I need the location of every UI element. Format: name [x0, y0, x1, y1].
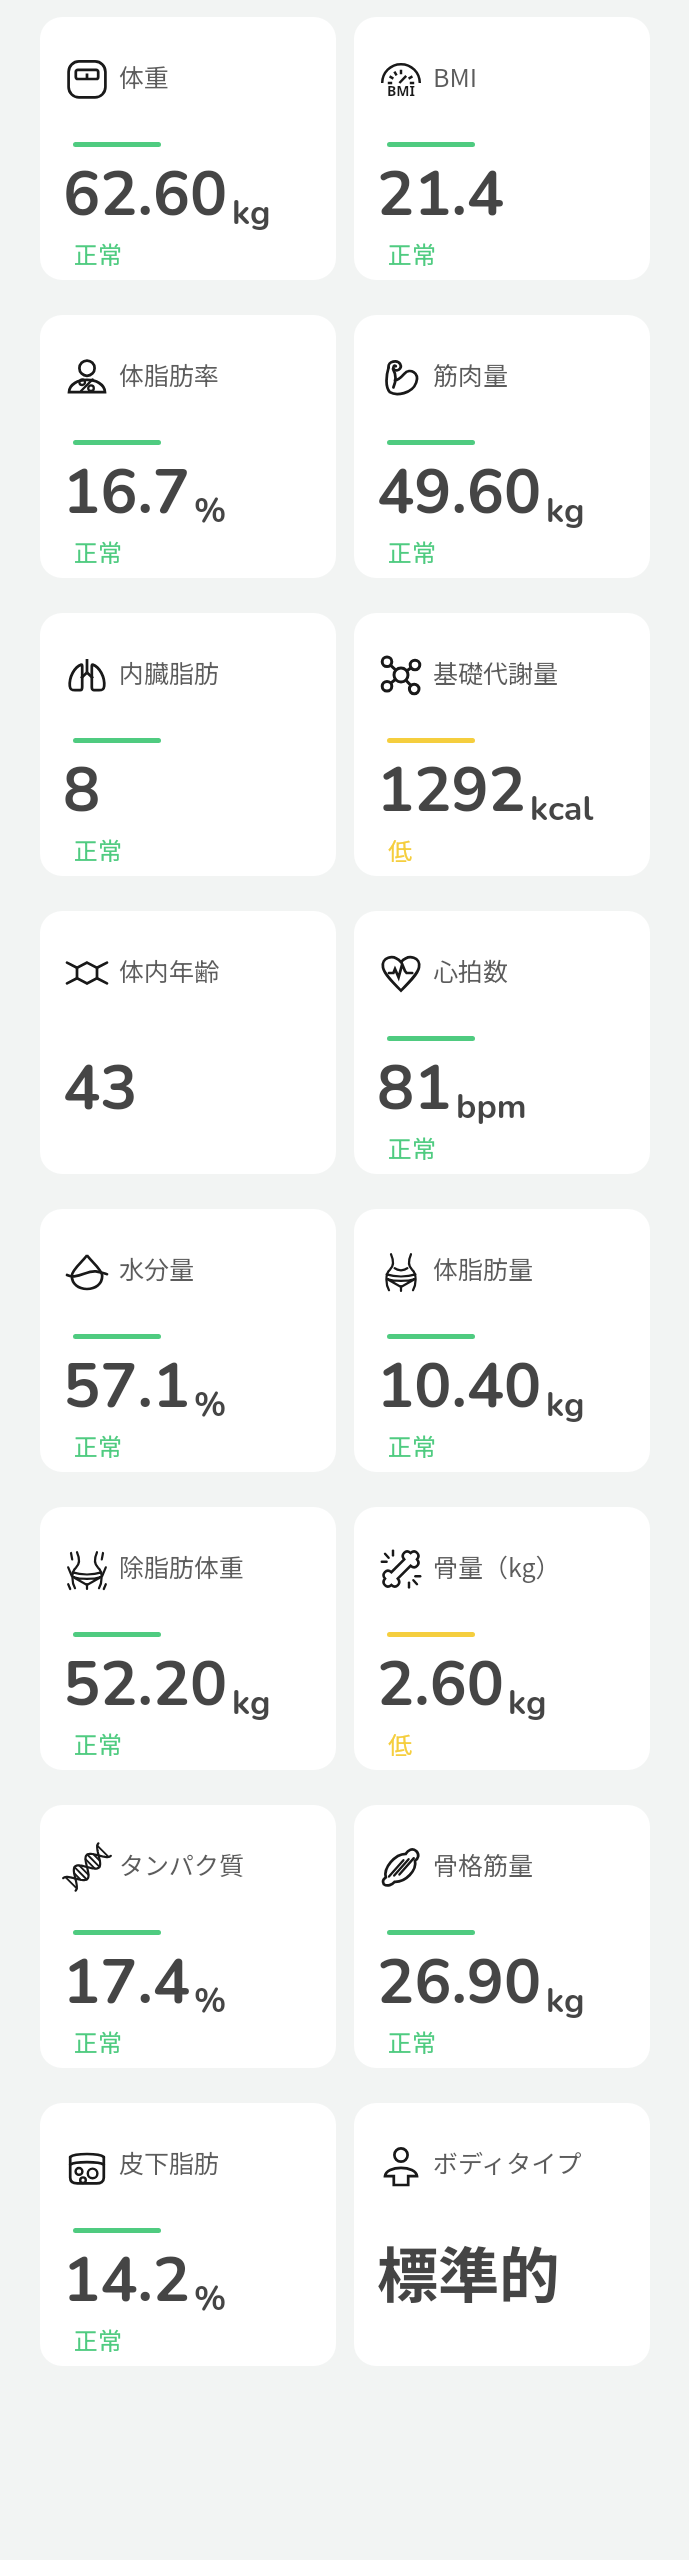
staticText: 正常	[388, 1428, 436, 1463]
staticText: 26.90	[377, 1940, 542, 2025]
staticText: 81	[377, 1046, 452, 1131]
staticText: kg	[232, 190, 271, 236]
staticText: 正常	[74, 236, 122, 271]
staticText: 低	[388, 832, 412, 867]
button[interactable]: bmi	[354, 17, 650, 280]
staticText: 16.7	[63, 450, 190, 535]
staticText: kg	[546, 1978, 585, 2024]
staticText: 体脂肪率	[119, 356, 220, 392]
staticText: 2.60	[377, 1642, 504, 1727]
staticText: BMI	[387, 81, 415, 100]
staticText: タンパク質	[119, 1846, 245, 1882]
staticText: 除脂肪体重	[119, 1548, 245, 1584]
staticText: 62.60	[63, 152, 228, 237]
button[interactable]: hexagon	[40, 911, 336, 1174]
other: hexagon	[67, 953, 107, 993]
staticText: 43	[63, 1046, 138, 1131]
other: lungs	[67, 655, 107, 695]
staticText: 正常	[388, 236, 436, 271]
other: person	[381, 2145, 421, 2185]
staticText: %	[194, 2276, 227, 2322]
staticText: 基礎代謝量	[433, 654, 559, 690]
button[interactable]: fiber	[354, 1805, 650, 2068]
other: waist	[381, 1251, 421, 1291]
staticText: ボディタイプ	[433, 2144, 582, 2180]
staticText: 体内年齢	[119, 952, 220, 988]
other: dna	[67, 1847, 107, 1887]
button[interactable]: waist2	[40, 1507, 336, 1770]
button[interactable]: drop	[40, 1209, 336, 1472]
staticText: 骨量（kg）	[433, 1548, 561, 1584]
staticText: 1292	[377, 748, 526, 833]
staticText: 17.4	[63, 1940, 190, 2025]
staticText: 筋肉量	[433, 356, 509, 392]
staticText: 骨格筋量	[433, 1846, 534, 1882]
staticText: 14.2	[63, 2238, 190, 2323]
staticText: 正常	[74, 2322, 122, 2357]
staticText: 57.1	[63, 1344, 190, 1429]
other: bmi	[381, 59, 421, 99]
other: scale	[67, 59, 107, 99]
staticText: 8	[63, 748, 101, 833]
staticText: 標準的	[377, 2227, 561, 2315]
staticText: 体脂肪量	[433, 1250, 534, 1286]
other: jar	[67, 2145, 107, 2185]
button[interactable]: lungs	[40, 613, 336, 876]
button[interactable]: scale	[40, 17, 336, 280]
staticText: kg	[546, 1382, 585, 1428]
staticText: 正常	[74, 832, 122, 867]
staticText: kg	[508, 1680, 547, 1726]
staticText: 正常	[74, 534, 122, 569]
staticText: 心拍数	[433, 952, 509, 988]
staticText: kg	[546, 488, 585, 534]
staticText: kcal	[530, 786, 594, 832]
staticText: 内臓脂肪	[119, 654, 220, 690]
button[interactable]: waist	[354, 1209, 650, 1472]
staticText: BMI	[433, 58, 478, 94]
staticText: 体重	[119, 58, 170, 94]
staticText: 皮下脂肪	[119, 2144, 220, 2180]
staticText: 水分量	[119, 1250, 195, 1286]
staticText: 21.4	[377, 152, 504, 237]
staticText: %	[194, 1382, 227, 1428]
staticText: 正常	[74, 2024, 122, 2059]
staticText: kg	[232, 1680, 271, 1726]
staticText: 10.40	[377, 1344, 542, 1429]
button[interactable]: jar	[40, 2103, 336, 2366]
staticText: %	[194, 1978, 227, 2024]
button[interactable]: dna	[40, 1805, 336, 2068]
staticText: %	[194, 488, 227, 534]
staticText: 正常	[74, 1428, 122, 1463]
staticText: 52.20	[63, 1642, 228, 1727]
staticText: bpm	[456, 1084, 527, 1130]
other: bodyfat	[67, 357, 107, 397]
staticText: 正常	[388, 2024, 436, 2059]
other: drop	[67, 1251, 107, 1291]
button[interactable]: heart	[354, 911, 650, 1174]
button[interactable]: bodyfat	[40, 315, 336, 578]
staticText: 正常	[74, 1726, 122, 1761]
other: heart	[381, 953, 421, 993]
button[interactable]: person	[354, 2103, 650, 2366]
button[interactable]: bone	[354, 1507, 650, 1770]
button[interactable]: muscle	[354, 315, 650, 578]
staticText: 49.60	[377, 450, 542, 535]
other: waist2	[67, 1549, 107, 1589]
staticText: 正常	[388, 1130, 436, 1165]
other: muscle	[381, 357, 421, 397]
other: molecule	[381, 655, 421, 695]
other: fiber	[381, 1847, 421, 1887]
staticText: 低	[388, 1726, 412, 1761]
button[interactable]: molecule	[354, 613, 650, 876]
staticText: 正常	[388, 534, 436, 569]
other: bone	[381, 1549, 421, 1589]
